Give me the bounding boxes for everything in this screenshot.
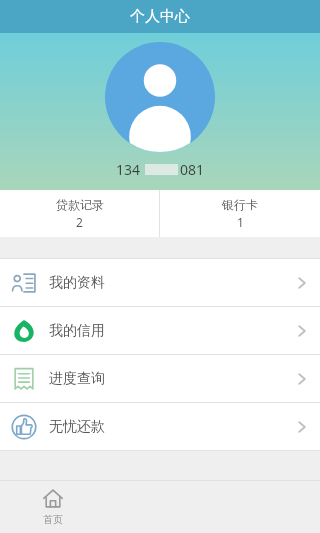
staticText: 银行卡: [222, 197, 258, 212]
button[interactable]: 我的资料: [0, 259, 320, 306]
staticText: 1: [237, 214, 244, 230]
staticText: 贷款记录: [56, 197, 104, 212]
button[interactable]: 贷款记录: [0, 190, 159, 237]
staticText: 134 081: [116, 160, 205, 179]
staticText: 个人中心: [130, 7, 190, 26]
staticText: 我的信用: [49, 322, 105, 340]
staticText: 首页: [43, 513, 63, 526]
staticText: 我的资料: [49, 274, 105, 292]
button[interactable]: 首页: [0, 481, 106, 533]
staticText: 进度查询: [49, 370, 105, 388]
button[interactable]: 进度查询: [0, 355, 320, 402]
button[interactable]: 无忧还款: [0, 403, 320, 450]
button[interactable]: Avatar: [105, 42, 215, 152]
button[interactable]: 银行卡: [160, 190, 320, 237]
staticText: 2: [76, 214, 83, 230]
staticText: 无忧还款: [49, 418, 105, 436]
button[interactable]: 我的信用: [0, 307, 320, 354]
